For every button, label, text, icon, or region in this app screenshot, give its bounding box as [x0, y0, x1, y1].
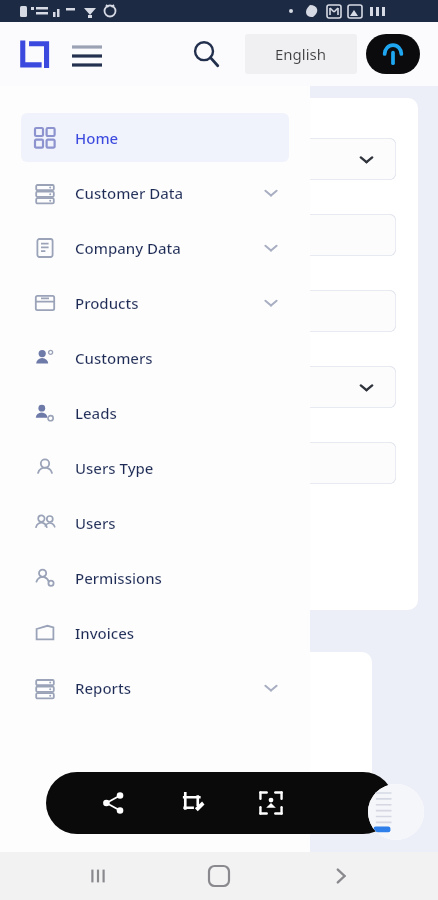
- button[interactable]: English: [245, 34, 357, 74]
- button[interactable]: Company Data: [21, 223, 289, 272]
- button[interactable]: Screenshot preview: [368, 784, 424, 840]
- button[interactable]: Users Type: [21, 443, 289, 492]
- button[interactable]: Profile: [366, 34, 420, 74]
- button[interactable]: [32, 366, 396, 408]
- staticText: Users: [75, 513, 116, 533]
- button[interactable]: Logo: [18, 37, 52, 71]
- button[interactable]: Search: [185, 33, 227, 75]
- staticText: Home: [75, 128, 119, 148]
- button[interactable]: Home: [21, 113, 289, 162]
- button[interactable]: [32, 214, 396, 256]
- button[interactable]: Customer Data: [21, 168, 289, 217]
- button[interactable]: [32, 290, 396, 332]
- staticText: Products: [75, 293, 139, 313]
- staticText: Users Type: [75, 458, 154, 478]
- button[interactable]: Permissions: [21, 553, 289, 602]
- staticText: English: [275, 44, 327, 64]
- button[interactable]: Leads: [21, 388, 289, 437]
- button[interactable]: [32, 442, 396, 484]
- button[interactable]: Invoices: [21, 608, 289, 657]
- button[interactable]: Customers: [21, 333, 289, 382]
- button[interactable]: Home: [195, 852, 243, 900]
- staticText: Company Data: [75, 238, 181, 258]
- button[interactable]: Menu: [66, 33, 108, 75]
- staticText: Customer Data: [75, 183, 184, 203]
- button[interactable]: Products: [21, 278, 289, 327]
- button[interactable]: [32, 138, 396, 180]
- button[interactable]: Share: [91, 781, 135, 825]
- button[interactable]: Users: [21, 498, 289, 547]
- staticText: Leads: [75, 403, 117, 423]
- button[interactable]: Scan: [249, 781, 293, 825]
- staticText: Permissions: [75, 568, 162, 588]
- button[interactable]: Reports: [21, 663, 289, 712]
- staticText: Customers: [75, 348, 153, 368]
- staticText: Invoices: [75, 623, 135, 643]
- button[interactable]: Back: [317, 852, 365, 900]
- button[interactable]: Recents: [74, 852, 122, 900]
- button[interactable]: Edit: [170, 781, 214, 825]
- staticText: Reports: [75, 678, 131, 698]
